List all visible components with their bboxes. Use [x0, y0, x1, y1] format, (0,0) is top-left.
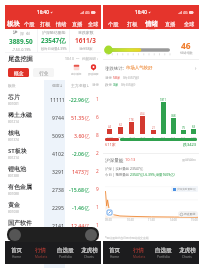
button[interactable]: 涨跌家数	[70, 29, 101, 52]
button[interactable]: 情绪	[142, 19, 161, 30]
button[interactable]: 涨跌统计:	[105, 61, 197, 74]
staticText: 801388	[8, 174, 19, 178]
button[interactable]: Expand chart	[105, 208, 114, 217]
staticText: Portfolio	[59, 255, 72, 259]
button[interactable]: 龙虎榜	[175, 241, 199, 264]
staticText: 沪深 | 实时量能	[105, 166, 130, 171]
staticText: 自选股	[155, 247, 172, 254]
staticText: (昨日57家)	[123, 75, 140, 80]
staticText: 14:00	[170, 218, 177, 222]
staticText: 涨停	[92, 83, 99, 87]
button[interactable]: 盘中播报	[71, 64, 82, 75]
staticText: Markets	[35, 255, 48, 259]
staticText: 全球	[88, 21, 99, 28]
button[interactable]: 首页	[103, 241, 127, 264]
staticText: 3889.50	[9, 37, 33, 46]
button[interactable]: 国产软件	[5, 216, 101, 234]
staticText: 概念	[14, 70, 24, 76]
staticText: 黄金	[8, 201, 20, 209]
button[interactable]: 个股	[21, 19, 37, 30]
button[interactable]: 行情	[29, 241, 53, 264]
button[interactable]: 芯片	[5, 90, 101, 108]
button[interactable]: 行情	[127, 241, 151, 264]
staticText: 2	[96, 168, 99, 175]
staticText: 11:30	[148, 218, 155, 222]
button[interactable]: 自选股	[151, 241, 175, 264]
staticText: 75	[182, 126, 185, 130]
button[interactable]: 全球	[85, 19, 101, 30]
button[interactable]: 核电	[5, 126, 101, 144]
button[interactable]: 稀土永磁	[5, 108, 101, 126]
button[interactable]: 沪深量能	[105, 154, 197, 165]
staticText: 跌3423	[183, 142, 197, 147]
staticText: 龙虎榜	[81, 247, 98, 254]
staticText: ›	[195, 157, 197, 162]
staticText: Portfolio	[157, 255, 170, 259]
staticText: 跌停	[105, 82, 113, 87]
staticText: 21	[152, 126, 155, 130]
staticText: 地产股	[8, 234, 26, 241]
staticText: 自选股	[57, 247, 74, 254]
staticText: Charts	[84, 255, 94, 259]
staticText: 12.44亿	[71, 222, 90, 229]
button[interactable]: 黄金	[5, 198, 101, 216]
button[interactable]: 概念	[8, 68, 29, 77]
button[interactable]: 板块	[5, 19, 21, 30]
staticText: •••	[76, 57, 80, 61]
staticText: 板块	[8, 83, 16, 88]
button[interactable]: 全球	[180, 19, 199, 30]
button[interactable]: 直播	[69, 19, 85, 30]
staticText: 情绪指数	[180, 51, 193, 55]
button[interactable]: 行业	[33, 68, 54, 77]
staticText: 801374	[8, 138, 19, 142]
staticText: 1	[96, 96, 99, 103]
staticText: 46	[181, 40, 191, 51]
staticText: 2141	[52, 222, 64, 229]
staticText: 历史量能	[184, 212, 196, 216]
button[interactable]: 首页	[5, 241, 29, 264]
staticText: 2295	[52, 204, 64, 211]
button[interactable]: 龙虎榜	[77, 241, 101, 264]
button[interactable]: 有色金属	[5, 180, 101, 198]
staticText: 1473万	[72, 168, 90, 175]
staticText: 盘中播报	[71, 72, 82, 75]
staticText: -15.68亿	[69, 186, 90, 193]
staticText: 10:13	[65, 56, 74, 61]
staticText: 178	[129, 118, 134, 122]
button[interactable]: 打板	[37, 19, 53, 30]
button[interactable]: 历史量能	[180, 212, 196, 216]
button[interactable]: 沪	[5, 29, 37, 52]
staticText: 1	[96, 204, 99, 211]
staticText: 全球	[184, 21, 195, 28]
staticText: 打板	[40, 21, 51, 28]
staticText: 4G	[85, 10, 90, 15]
staticText: 9	[96, 186, 99, 193]
button[interactable]: 地产股	[5, 234, 101, 241]
button[interactable]: 异动提醒	[88, 64, 99, 75]
staticText: 挖掘说明	[82, 57, 96, 61]
button[interactable]: 个股	[103, 19, 123, 30]
staticText: 主力净额↓	[71, 83, 90, 88]
staticText: 2	[96, 234, 99, 241]
button[interactable]: 直播	[161, 19, 180, 30]
staticText: 4G	[183, 10, 188, 15]
staticText: 9744	[52, 114, 64, 121]
staticText: 16:40	[37, 9, 49, 15]
staticText: Home	[110, 255, 120, 259]
staticText: 情绪	[56, 21, 67, 28]
staticText: 368	[171, 114, 176, 118]
staticText: 创	[26, 31, 30, 36]
button[interactable]: 自选股	[53, 241, 77, 264]
staticText: 行情	[35, 247, 47, 254]
button[interactable]: 打板	[123, 19, 142, 30]
button[interactable]: 锂电池	[5, 162, 101, 180]
button[interactable]: 沪深预估量能	[38, 29, 69, 52]
button[interactable]: ST板块	[5, 144, 101, 162]
staticText: -7~-5	[118, 135, 124, 138]
button[interactable]: Audio player	[7, 227, 99, 242]
button[interactable]: 情绪	[53, 19, 69, 30]
staticText: 454	[140, 112, 145, 116]
staticText: 涨跌统计:	[105, 65, 124, 71]
staticText: 58家	[113, 75, 121, 80]
